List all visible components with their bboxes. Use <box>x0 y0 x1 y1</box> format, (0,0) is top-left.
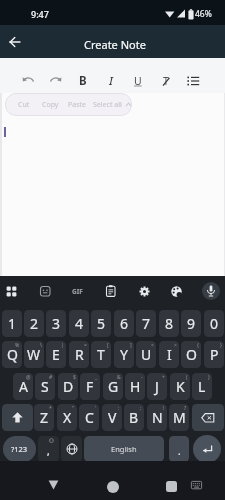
button[interactable]: Select all <box>89 93 125 116</box>
button[interactable]: 1 <box>2 310 22 337</box>
staticText: O <box>186 345 197 364</box>
button[interactable]: 0 <box>204 310 224 337</box>
staticText: = <box>84 342 87 349</box>
button[interactable]: 7 <box>136 310 156 337</box>
button[interactable]: H <box>125 373 145 400</box>
staticText: . <box>178 444 181 458</box>
button[interactable]: D <box>58 373 78 400</box>
staticText: J <box>155 377 159 396</box>
staticText: F <box>86 377 94 396</box>
button[interactable]: T <box>91 341 111 368</box>
button[interactable] <box>8 35 22 49</box>
button[interactable]: 9 <box>181 310 201 337</box>
button[interactable]: Z <box>34 404 54 431</box>
button[interactable]: S <box>35 373 55 400</box>
button[interactable]: L <box>192 373 212 400</box>
button[interactable]: Y <box>114 341 134 368</box>
button[interactable]: W <box>24 341 44 368</box>
staticText: ' <box>95 405 97 412</box>
button[interactable] <box>2 404 33 431</box>
button[interactable]: B <box>76 73 90 89</box>
staticText: R <box>75 345 84 364</box>
button[interactable]: 6 <box>114 310 134 337</box>
button[interactable]: Q <box>2 341 22 368</box>
button[interactable] <box>187 76 200 87</box>
staticText: U <box>141 345 152 364</box>
staticText: % <box>15 342 20 349</box>
button[interactable]: I <box>159 341 179 368</box>
button[interactable]: ?123 <box>3 436 36 462</box>
staticText: 6 <box>120 314 129 333</box>
staticText: N <box>152 408 163 427</box>
button[interactable]: T <box>159 73 173 89</box>
button[interactable]: . <box>169 436 189 462</box>
button[interactable] <box>106 285 116 297</box>
staticText: D <box>63 377 74 396</box>
staticText: Cut <box>18 100 30 110</box>
button[interactable]: R <box>69 341 89 368</box>
button[interactable]: 8 <box>159 310 179 337</box>
staticText: 5 <box>97 314 106 333</box>
button[interactable]: C <box>79 404 99 431</box>
button[interactable] <box>48 480 59 490</box>
button[interactable] <box>22 75 34 87</box>
button[interactable] <box>202 282 220 300</box>
button[interactable] <box>125 101 132 109</box>
button[interactable]: O <box>181 341 201 368</box>
button[interactable]: I <box>104 73 118 89</box>
button[interactable] <box>50 75 62 87</box>
button[interactable]: GIF <box>69 285 86 297</box>
button[interactable]: 3 <box>46 310 66 337</box>
button[interactable] <box>61 436 82 462</box>
staticText: * <box>49 405 52 412</box>
staticText: English <box>111 444 137 454</box>
button[interactable]: M <box>169 404 189 431</box>
button[interactable] <box>166 481 177 492</box>
button[interactable]: Cut <box>13 93 35 116</box>
staticText: _ <box>95 374 98 381</box>
button[interactable] <box>6 286 17 297</box>
button[interactable] <box>192 404 224 431</box>
staticText: ] <box>130 342 132 349</box>
button[interactable]: K <box>170 373 190 400</box>
staticText: ?123 <box>11 444 28 454</box>
button[interactable]: G <box>103 373 123 400</box>
button[interactable]: 4 <box>69 310 89 337</box>
button[interactable]: X <box>57 404 77 431</box>
staticText: L <box>198 377 206 396</box>
button[interactable]: English <box>84 436 164 462</box>
button[interactable]: N <box>147 404 167 431</box>
button[interactable]: , <box>38 436 59 462</box>
button[interactable] <box>191 481 202 490</box>
staticText: " <box>72 405 75 412</box>
staticText: 4 <box>75 314 84 333</box>
staticText: U <box>134 74 142 88</box>
staticText: 9:47 <box>31 8 49 20</box>
button[interactable]: A <box>13 373 33 400</box>
button[interactable] <box>171 286 182 297</box>
button[interactable]: P <box>204 341 224 368</box>
button[interactable]: V <box>102 404 122 431</box>
staticText: B <box>129 408 139 427</box>
button[interactable]: J <box>147 373 167 400</box>
button[interactable] <box>107 481 119 493</box>
button[interactable]: 5 <box>91 310 111 337</box>
button[interactable] <box>193 435 221 463</box>
button[interactable]: Paste <box>63 93 91 116</box>
button[interactable] <box>40 286 51 297</box>
staticText: GIF <box>72 287 83 296</box>
button[interactable]: E <box>46 341 66 368</box>
button[interactable]: B <box>124 404 144 431</box>
staticText: 7 <box>142 314 151 333</box>
button[interactable]: Copy <box>36 93 64 116</box>
staticText: Select all <box>93 100 122 110</box>
button[interactable]: U <box>131 73 145 89</box>
staticText: Copy <box>42 100 59 110</box>
button[interactable]: U <box>136 341 156 368</box>
staticText: W <box>27 345 41 364</box>
staticText: } <box>220 342 222 349</box>
button[interactable] <box>139 286 150 297</box>
button[interactable]: F <box>80 373 100 400</box>
staticText: 8 <box>165 314 174 333</box>
button[interactable]: 2 <box>24 310 44 337</box>
